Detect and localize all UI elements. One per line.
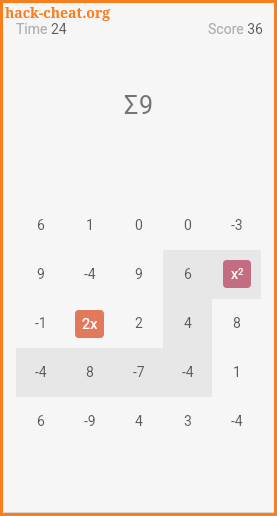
button[interactable]: Number 4	[163, 299, 212, 348]
staticText: 1	[86, 217, 94, 233]
button[interactable]: Number 6	[16, 397, 65, 446]
staticText: 0	[135, 217, 143, 233]
staticText: 2x	[82, 316, 98, 333]
button[interactable]: Number -1	[16, 299, 65, 348]
button[interactable]: Number -4	[65, 250, 114, 299]
staticText: 6	[37, 217, 45, 233]
staticText: -7	[133, 364, 145, 380]
button[interactable]: Number 6	[16, 201, 65, 250]
staticText: 8	[233, 315, 241, 331]
button[interactable]: Square multiplier tile	[212, 250, 261, 299]
button[interactable]: Number 8	[212, 299, 261, 348]
staticText: -4	[182, 364, 194, 380]
button[interactable]: Double multiplier tile	[65, 299, 114, 348]
button[interactable]: Number 6	[163, 250, 212, 299]
staticText: -1	[35, 315, 47, 331]
button[interactable]: Number -3	[212, 201, 261, 250]
staticText: hack-cheat.org	[5, 3, 111, 22]
button[interactable]: Number 4	[114, 397, 163, 446]
staticText: 9	[37, 266, 45, 282]
staticText: x2	[231, 266, 244, 283]
button[interactable]: Number -9	[65, 397, 114, 446]
staticText: 2	[135, 315, 143, 331]
staticText: -3	[231, 217, 243, 233]
staticText: 3	[184, 413, 192, 429]
staticText: -4	[84, 266, 96, 282]
button[interactable]: Number -7	[114, 348, 163, 397]
button[interactable]: Score 36	[208, 21, 263, 37]
button[interactable]: Number 2	[114, 299, 163, 348]
staticText: -4	[35, 364, 47, 380]
staticText: 8	[86, 364, 94, 380]
button[interactable]: Number 1	[212, 348, 261, 397]
button[interactable]: Number -4	[212, 397, 261, 446]
button[interactable]: Number 9	[16, 250, 65, 299]
button[interactable]: Number 0	[114, 201, 163, 250]
staticText: 9	[135, 266, 143, 282]
button[interactable]: Number 1	[65, 201, 114, 250]
staticText: 0	[184, 217, 192, 233]
button[interactable]: Number 0	[163, 201, 212, 250]
button[interactable]: Time 24	[16, 21, 67, 37]
button[interactable]: Number -4	[16, 348, 65, 397]
staticText: 4	[135, 413, 143, 429]
staticText: 6	[184, 266, 192, 282]
staticText: 4	[184, 315, 192, 331]
staticText: 6	[37, 413, 45, 429]
staticText: Σ9	[124, 91, 154, 120]
button[interactable]: Number 9	[114, 250, 163, 299]
staticText: -9	[84, 413, 96, 429]
button[interactable]: Number 3	[163, 397, 212, 446]
button[interactable]: Number -4	[163, 348, 212, 397]
button[interactable]: Number 8	[65, 348, 114, 397]
staticText: 1	[233, 364, 241, 380]
staticText: -4	[231, 413, 243, 429]
